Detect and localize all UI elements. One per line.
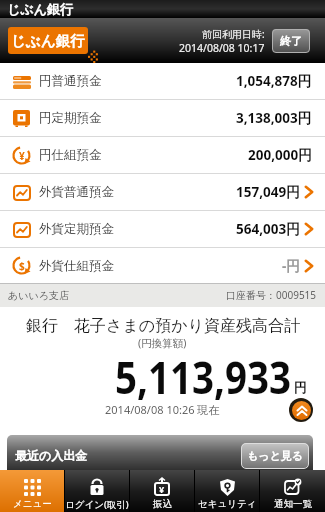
staticText: じぶん銀行 [7,1,73,17]
staticText: 157,049円 [236,183,300,201]
button[interactable]: 終了 [272,29,310,53]
button[interactable]: $ [0,248,325,283]
staticText: 円仕組預金 [39,147,102,163]
button[interactable]: ¥ [0,137,325,173]
button[interactable] [289,398,313,422]
staticText: 最近の入出金 [15,448,88,463]
staticText: メニュー [13,498,52,510]
button[interactable]: 最近の入出金 [7,435,313,470]
staticText: ¥ [159,483,165,495]
staticText: ¥ [19,149,25,163]
staticText: 終了 [280,34,302,48]
staticText: 円普通預金 [39,73,102,89]
button[interactable]: 円普通預金 [0,63,325,99]
staticText: 3,138,003円 [236,109,312,127]
staticText: 円 [294,379,307,395]
staticText: 2014/08/08 10:26 現在 [105,402,220,417]
staticText: 外貨定期預金 [39,221,114,237]
button[interactable]: メニュー [0,470,64,512]
staticText: 通知一覧 [274,498,312,510]
staticText: 銀行 花子さまの預かり資産残高合計 [26,314,300,336]
staticText: $ [19,259,25,273]
button[interactable]: じぶん銀行 [8,27,88,54]
button[interactable]: 外貨定期預金 [0,211,325,247]
staticText: 口座番号：0009515 [226,288,317,302]
button[interactable]: ログイン(取引) [65,470,129,512]
staticText: ログイン(取引) [65,498,129,511]
staticText: 2014/08/08 10:17 [179,41,265,55]
button[interactable]: ¥ [130,470,194,512]
staticText: 5,113,933 [115,345,292,407]
staticText: 円定期預金 [39,110,102,126]
staticText: (円換算額) [138,336,187,350]
staticText: 外貨仕組預金 [39,258,114,274]
staticText: -円 [282,257,300,275]
staticText: 200,000円 [248,146,312,164]
staticText: もっと見る [247,449,304,463]
staticText: 外貨普通預金 [39,184,114,200]
staticText: あいいろ支店 [8,289,69,302]
button[interactable]: 外貨普通預金 [0,174,325,210]
staticText: 1,054,878円 [236,72,312,90]
button[interactable]: 円定期預金 [0,100,325,136]
button[interactable]: 通知一覧 [260,470,325,512]
staticText: じぶん銀行 [11,32,85,50]
staticText: セキュリティ [198,498,257,510]
button[interactable]: もっと見る [241,443,309,469]
button[interactable]: セキュリティ [195,470,259,512]
staticText: 振込 [153,498,172,510]
staticText: 564,003円 [236,220,300,238]
staticText: 前回利用日時: [202,27,265,41]
